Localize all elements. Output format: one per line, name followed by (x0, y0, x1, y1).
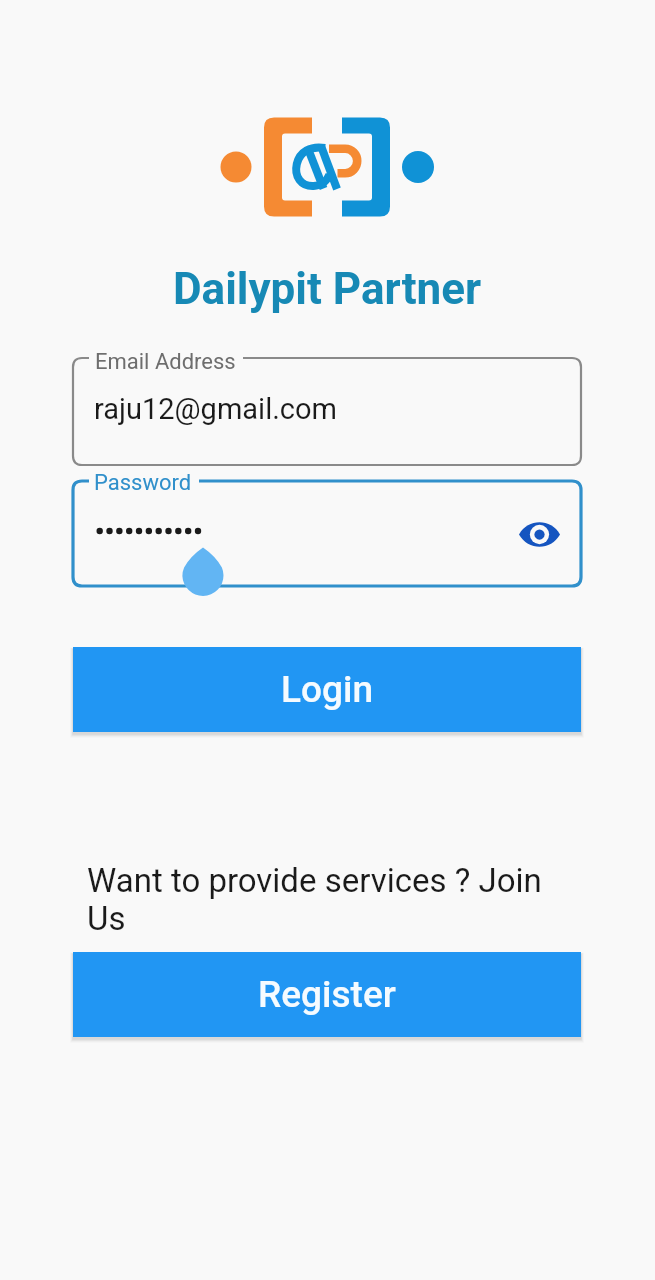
staticText: Register (258, 973, 396, 1016)
staticText: Email Address (95, 349, 236, 375)
staticText: Password (94, 470, 192, 496)
button[interactable]: Toggle password visibility (512, 507, 566, 561)
button[interactable] (73, 481, 581, 586)
staticText: Dailypit Partner (173, 263, 482, 315)
staticText: raju12@gmail.com (94, 392, 337, 426)
staticText: Want to provide services ? Join Us (87, 861, 555, 938)
button[interactable] (73, 358, 581, 465)
button[interactable]: Register (73, 952, 581, 1037)
staticText: Login (281, 668, 373, 711)
button[interactable]: Login (73, 647, 581, 732)
